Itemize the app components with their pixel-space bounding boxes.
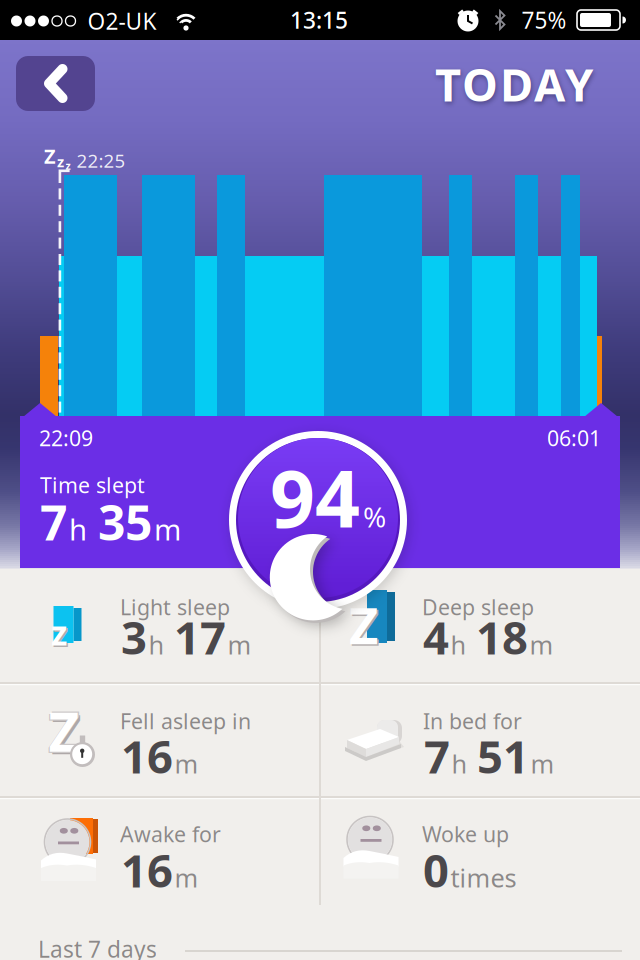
staticText: 7: [40, 490, 67, 554]
staticText: TODAY: [435, 54, 593, 114]
staticText: m: [154, 510, 181, 549]
staticText: Z: [349, 591, 378, 658]
staticText: 75%: [521, 5, 566, 35]
staticText: In bed for: [423, 707, 522, 735]
button[interactable]: Back: [16, 56, 95, 111]
staticText: 3: [121, 607, 147, 667]
staticText: Z: [50, 694, 81, 765]
staticText: 22:25: [76, 148, 125, 173]
staticText: Z: [51, 698, 82, 769]
staticText: Light sleep: [120, 593, 230, 621]
staticText: O2-UK: [87, 6, 156, 36]
staticText: 16: [121, 726, 173, 786]
staticText: m: [530, 747, 554, 780]
staticText: Z: [48, 696, 79, 766]
staticText: 94: [270, 445, 360, 549]
staticText: Woke up: [422, 820, 509, 848]
staticText: z: [52, 612, 68, 656]
staticText: 51: [477, 726, 529, 786]
staticText: m: [529, 628, 553, 661]
staticText: 4: [423, 607, 449, 667]
staticText: h: [69, 510, 87, 549]
staticText: z: [51, 610, 67, 655]
staticText: %: [363, 498, 386, 535]
staticText: Awake for: [120, 820, 221, 848]
staticText: 06:01: [547, 424, 601, 452]
staticText: z: [65, 158, 70, 173]
staticText: Fell asleep in: [120, 707, 251, 735]
staticText: 17: [174, 607, 226, 667]
staticText: 18: [476, 607, 528, 667]
staticText: m: [174, 861, 198, 894]
staticText: h: [148, 628, 164, 661]
staticText: 13:15: [290, 5, 348, 35]
staticText: times: [450, 861, 516, 894]
staticText: 0: [423, 840, 449, 900]
staticText: Deep sleep: [422, 593, 534, 621]
staticText: Z: [44, 143, 56, 169]
staticText: Z: [350, 592, 379, 660]
staticText: Last 7 days: [38, 934, 157, 960]
staticText: h: [451, 747, 467, 780]
staticText: Z: [47, 697, 78, 768]
staticText: z: [57, 152, 64, 171]
staticText: 16: [121, 840, 173, 900]
staticText: m: [174, 747, 198, 780]
staticText: 35: [98, 490, 152, 554]
staticText: m: [227, 628, 251, 661]
staticText: h: [450, 628, 466, 661]
staticText: Time slept: [40, 471, 145, 499]
staticText: 22:09: [39, 424, 93, 452]
staticText: 7: [424, 726, 450, 786]
